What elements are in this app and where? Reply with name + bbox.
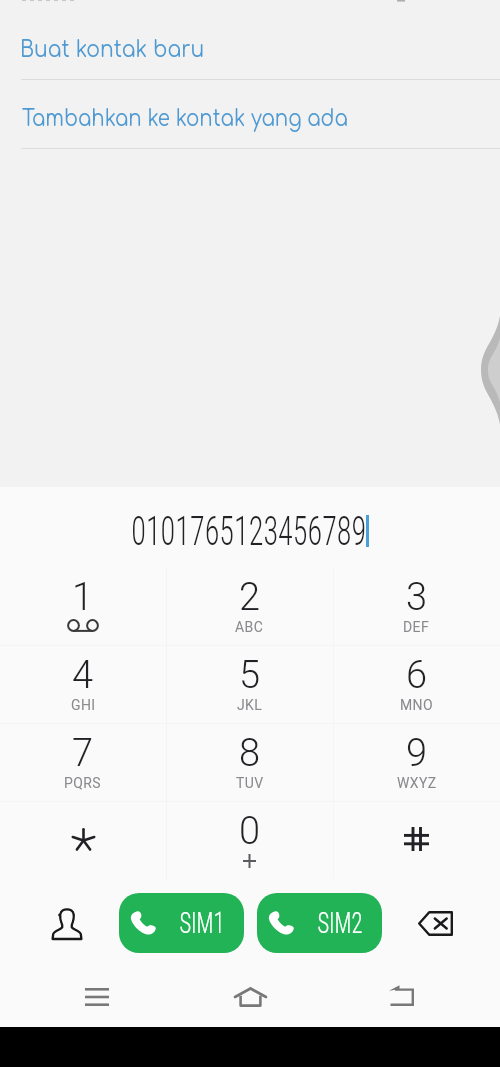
staticText: Buat kontak baru [20, 36, 204, 63]
staticText: JKL [237, 697, 263, 713]
staticText: TUV [236, 775, 264, 791]
staticText: 4 [72, 653, 94, 698]
button[interactable]: Add to contacts [36, 892, 98, 954]
button[interactable]: Recent apps [67, 967, 127, 1027]
staticText: 8 [239, 731, 261, 776]
button[interactable]: 3 [333, 567, 500, 645]
staticText: 1 [72, 575, 94, 620]
button[interactable]: 6 [333, 645, 500, 723]
staticText: 5 [239, 653, 261, 698]
button[interactable]: Back [371, 965, 431, 1025]
button[interactable] [333, 801, 500, 879]
button[interactable]: SIM1 [119, 893, 244, 953]
button[interactable]: 8 [166, 723, 333, 801]
button[interactable]: 2 [166, 567, 333, 645]
staticText: 9 [406, 731, 428, 776]
button[interactable]: Tambahkan ke kontak yang ada [0, 84, 500, 152]
button[interactable]: Home [220, 967, 280, 1027]
button[interactable]: SIM2 [257, 893, 382, 953]
staticText: 2 [239, 575, 261, 620]
button[interactable]: 7 [0, 723, 166, 801]
button[interactable]: 4 [0, 645, 166, 723]
staticText: PQRS [64, 775, 102, 791]
button[interactable]: 9 [333, 723, 500, 801]
staticText: 0101765123456789 [131, 508, 367, 554]
button[interactable]: Backspace [404, 892, 466, 954]
staticText: DEF [403, 619, 430, 635]
staticText: MNO [400, 697, 434, 713]
staticText: Tambahkan ke kontak yang ada [22, 105, 348, 132]
staticText: WXYZ [397, 775, 437, 791]
staticText: 3 [406, 575, 428, 620]
staticText: SIM1 [179, 906, 225, 940]
button[interactable]: Buat kontak baru [0, 20, 500, 79]
staticText: 0 [239, 809, 261, 854]
staticText: SIM2 [317, 906, 363, 940]
staticText: 6 [406, 653, 428, 698]
staticText: 7 [72, 731, 94, 776]
button[interactable]: 0 [166, 801, 333, 879]
button[interactable]: 5 [166, 645, 333, 723]
button[interactable]: 1 [0, 567, 166, 645]
staticText: GHI [71, 697, 96, 713]
staticText: ABC [235, 619, 264, 635]
button[interactable] [0, 801, 166, 879]
